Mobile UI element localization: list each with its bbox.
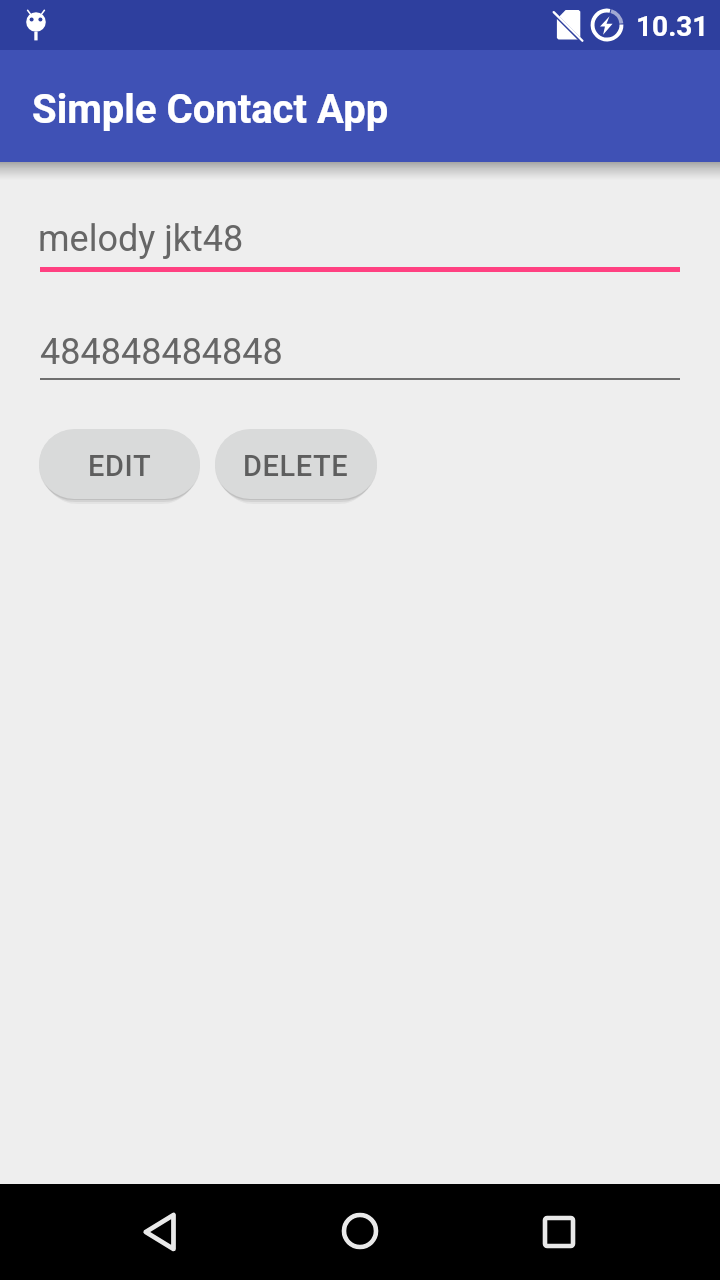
staticText: 484848484848 [40, 331, 283, 373]
button[interactable]: EDIT [39, 429, 200, 499]
button[interactable]: Home [330, 1201, 390, 1261]
button[interactable]: DELETE [215, 429, 377, 499]
staticText: 10.31 [636, 10, 709, 43]
button[interactable]: Back [130, 1202, 190, 1262]
button[interactable]: Recents [529, 1202, 589, 1262]
button[interactable]: melody jkt48 [40, 202, 680, 274]
staticText: DELETE [243, 449, 349, 483]
staticText: melody jkt48 [38, 218, 244, 260]
staticText: Simple Contact App [32, 86, 389, 133]
button[interactable]: 484848484848 [40, 315, 680, 382]
staticText: EDIT [88, 449, 152, 483]
